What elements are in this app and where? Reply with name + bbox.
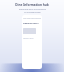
- staticText: Monday 09:00: [23, 37, 34, 39]
- staticText: Dine Information hub: [15, 3, 49, 7]
- staticText: Your restaurant information: [23, 17, 41, 19]
- staticText: in one simple place: [24, 11, 41, 13]
- staticText: Everything about the restaurant: [19, 8, 46, 10]
- staticText: Opening hours: [23, 22, 39, 25]
